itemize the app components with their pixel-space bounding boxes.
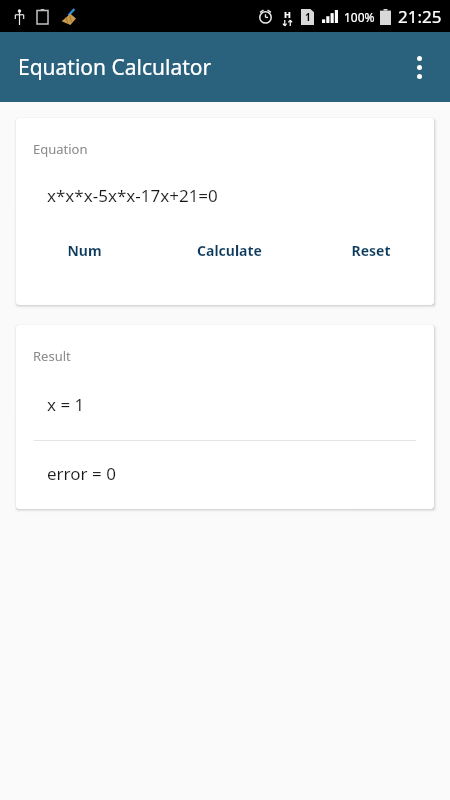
- button[interactable]: More options: [396, 44, 442, 90]
- button[interactable]: Calculate: [152, 232, 307, 268]
- staticText: H: [284, 8, 291, 20]
- button[interactable]: Num: [16, 232, 152, 268]
- staticText: Equation: [33, 140, 88, 158]
- button[interactable]: Reset: [307, 232, 434, 268]
- staticText: Equation Calculator: [18, 53, 212, 82]
- staticText: Reset: [351, 241, 391, 260]
- staticText: Calculate: [197, 241, 262, 260]
- staticText: x*x*x-5x*x-17x+21=0: [47, 184, 218, 207]
- staticText: 100%: [344, 9, 375, 25]
- staticText: error = 0: [47, 462, 116, 485]
- staticText: 1: [305, 10, 311, 24]
- staticText: 21:25: [398, 5, 442, 28]
- staticText: Result: [33, 347, 71, 365]
- staticText: x = 1: [47, 393, 85, 416]
- staticText: Num: [67, 241, 102, 260]
